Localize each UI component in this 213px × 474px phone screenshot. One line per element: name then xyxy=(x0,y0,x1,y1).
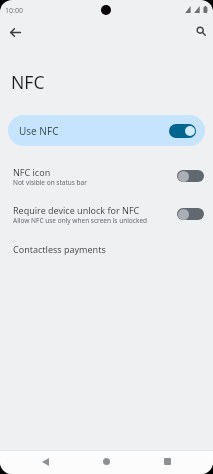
button[interactable]: Use NFC xyxy=(8,115,205,146)
staticText: Contactless payments xyxy=(13,243,106,255)
button[interactable]: Recents xyxy=(153,451,181,472)
button[interactable]: Contactless payments xyxy=(0,237,213,261)
staticText: NFC xyxy=(11,70,45,94)
button[interactable]: Require device unlock for NFC xyxy=(0,200,213,228)
staticText: NFC icon xyxy=(13,166,51,178)
staticText: Require device unlock for NFC xyxy=(13,204,140,216)
button[interactable]: Back xyxy=(31,451,59,472)
staticText: Allow NFC use only when screen is unlock… xyxy=(13,216,148,225)
staticText: Not visible on status bar xyxy=(13,178,87,187)
button[interactable]: NFC icon xyxy=(0,162,213,190)
staticText: 10:00 xyxy=(5,6,23,16)
staticText: Use NFC xyxy=(19,124,59,138)
button[interactable]: Back xyxy=(1,18,29,46)
button[interactable]: Home xyxy=(92,451,120,472)
button[interactable]: Search xyxy=(187,17,213,45)
